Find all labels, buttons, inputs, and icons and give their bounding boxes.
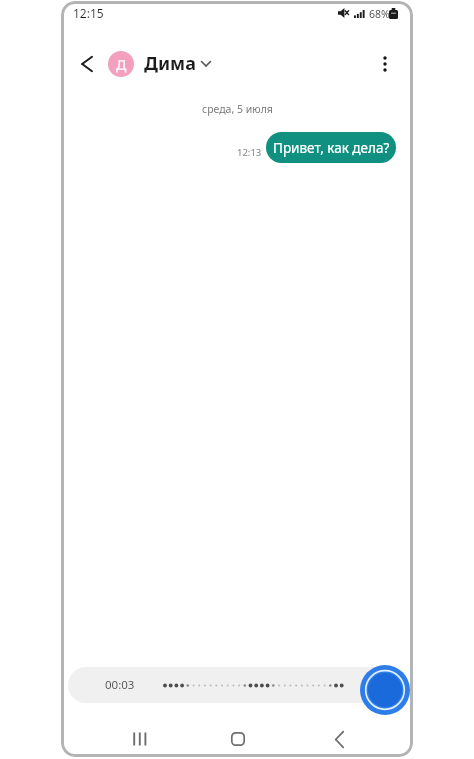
staticText: Привет, как дела?	[273, 139, 390, 157]
staticText: 12:15	[73, 5, 104, 21]
button[interactable]	[222, 723, 254, 755]
staticText: среда, 5 июля	[202, 102, 273, 116]
button[interactable]: Д	[108, 49, 213, 79]
button[interactable]: Привет, как дела?	[266, 132, 396, 163]
button[interactable]	[124, 723, 156, 755]
staticText: Д	[116, 55, 127, 74]
button[interactable]	[71, 48, 103, 80]
staticText: 00:03	[105, 677, 135, 693]
button[interactable]	[323, 723, 355, 755]
button[interactable]	[360, 665, 410, 715]
staticText: 12:13	[237, 146, 262, 159]
button[interactable]	[369, 48, 401, 80]
staticText: Дима	[144, 51, 196, 76]
button[interactable]: 00:03	[68, 667, 398, 703]
staticText: 68%	[369, 7, 390, 21]
